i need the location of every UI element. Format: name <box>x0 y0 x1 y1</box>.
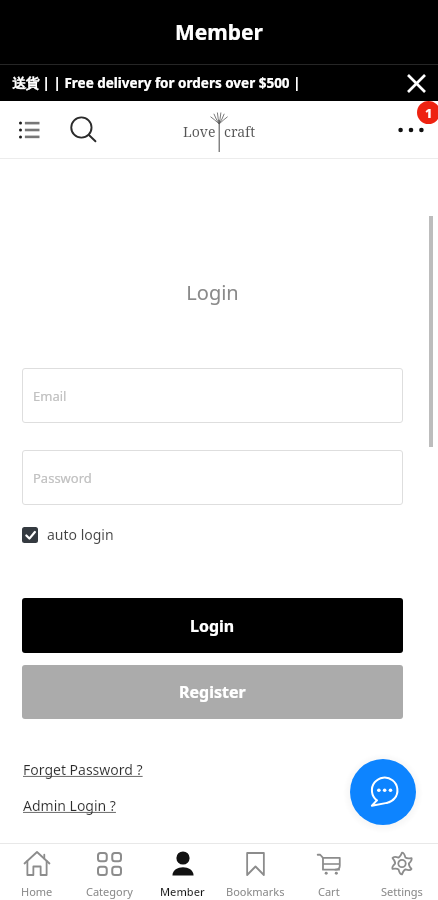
staticText: Login <box>190 615 235 637</box>
staticText: auto login <box>47 525 114 544</box>
button[interactable]: Category <box>73 844 146 900</box>
button[interactable]: More options <box>389 108 433 152</box>
button[interactable]: Close banner <box>399 66 433 100</box>
button[interactable]: Register <box>22 665 403 719</box>
button[interactable]: Email <box>22 368 403 423</box>
staticText: Register <box>179 681 246 703</box>
button[interactable]: Admin Login ? <box>23 796 116 815</box>
staticText: Admin Login ? <box>23 796 116 815</box>
staticText: Home <box>21 884 53 899</box>
button[interactable]: Search <box>62 108 106 152</box>
staticText: Forget Password ? <box>23 760 143 779</box>
staticText: Settings <box>381 884 423 899</box>
button[interactable]: Forget Password ? <box>23 760 143 779</box>
button[interactable]: Member <box>146 844 219 900</box>
staticText: Cart <box>318 884 340 899</box>
staticText: Bookmarks <box>226 884 285 899</box>
button[interactable]: auto login <box>22 525 114 544</box>
staticText: Member <box>175 18 264 47</box>
button[interactable]: Login <box>22 598 403 653</box>
staticText: Member <box>160 884 205 899</box>
button[interactable]: Bookmarks <box>219 844 292 900</box>
staticText: Category <box>86 884 133 899</box>
button[interactable]: 送貨 | | Free delivery for orders over $50… <box>0 65 438 101</box>
button[interactable]: Chat <box>350 759 416 825</box>
button[interactable]: Settings <box>365 844 438 900</box>
staticText: craft <box>224 122 256 141</box>
button[interactable]: Home <box>0 844 73 900</box>
staticText: Password <box>33 469 92 487</box>
button[interactable]: Cart <box>292 844 365 900</box>
staticText: 送貨 | | Free delivery for orders over $50… <box>12 74 301 92</box>
staticText: 1 <box>425 104 433 122</box>
button[interactable]: Menu <box>7 108 51 152</box>
staticText: Login <box>22 279 403 306</box>
staticText: Love <box>183 122 216 141</box>
staticText: Email <box>33 387 67 405</box>
button[interactable]: Password <box>22 450 403 505</box>
